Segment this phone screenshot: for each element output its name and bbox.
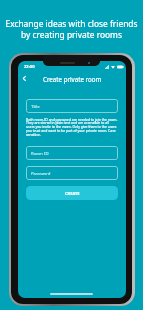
button[interactable]: Room ID — [26, 146, 118, 160]
staticText: CREATE — [65, 191, 80, 196]
staticText: by creating private rooms — [21, 29, 122, 40]
staticText: Exchange ideas with close friends — [5, 18, 138, 29]
button[interactable]: Password — [26, 166, 118, 180]
button[interactable]: Back — [18, 72, 31, 85]
button[interactable]: CREATE — [26, 186, 118, 200]
staticText: Room ID — [31, 150, 49, 156]
staticText: 22:00 — [24, 64, 35, 70]
button[interactable]: Title — [26, 99, 118, 113]
staticText: Create private room — [43, 75, 102, 83]
staticText: Password — [31, 170, 51, 176]
staticText: Both room-ID and password are needed to … — [26, 117, 118, 137]
staticText: Title — [31, 103, 40, 109]
